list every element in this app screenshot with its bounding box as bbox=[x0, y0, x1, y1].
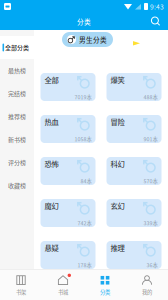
staticText: 全部分类 bbox=[5, 43, 29, 52]
button[interactable]: 推理 bbox=[106, 241, 161, 269]
staticText: 书城 bbox=[58, 288, 68, 296]
button[interactable]: 冒险 bbox=[106, 115, 161, 143]
button[interactable]: 恐怖 bbox=[40, 157, 95, 185]
staticText: 推理 bbox=[110, 242, 124, 253]
button[interactable]: 分类 bbox=[84, 269, 126, 300]
staticText: 488本 bbox=[143, 93, 157, 101]
staticText: 分类 bbox=[77, 17, 91, 26]
button[interactable]: 新书榜 bbox=[0, 128, 34, 151]
button[interactable]: 热血 bbox=[40, 115, 95, 143]
button[interactable]: 最热榜 bbox=[0, 59, 34, 82]
staticText: 1058本 bbox=[74, 135, 91, 143]
staticText: 魔幻 bbox=[44, 200, 58, 211]
staticText: 7019本 bbox=[74, 93, 91, 101]
staticText: 恐怖 bbox=[44, 158, 58, 169]
button[interactable]: 科幻 bbox=[106, 157, 161, 185]
button[interactable]: 推荐榜 bbox=[0, 105, 34, 128]
button[interactable]: 评分榜 bbox=[0, 151, 34, 174]
button[interactable]: 书架 bbox=[0, 269, 42, 300]
staticText: 84本 bbox=[80, 177, 91, 185]
button[interactable]: 魔幻 bbox=[40, 199, 95, 227]
button[interactable]: 男生分类 bbox=[62, 32, 113, 47]
button[interactable]: 悬疑 bbox=[40, 241, 95, 269]
staticText: 全部 bbox=[44, 74, 58, 85]
staticText: 我的 bbox=[142, 288, 152, 296]
staticText: 178本 bbox=[77, 261, 91, 269]
staticText: 最热榜 bbox=[8, 66, 26, 75]
staticText: 男生分类 bbox=[79, 35, 107, 44]
staticText: 收藏榜 bbox=[8, 181, 26, 190]
button[interactable]: 完结榜 bbox=[0, 82, 34, 105]
button[interactable]: 玄幻 bbox=[106, 199, 161, 227]
staticText: 玄幻 bbox=[110, 200, 124, 211]
staticText: 9:43 bbox=[150, 2, 164, 11]
staticText: 901本 bbox=[143, 135, 157, 143]
staticText: 完结榜 bbox=[8, 89, 26, 98]
staticText: 分类 bbox=[100, 288, 110, 296]
staticText: 339本 bbox=[143, 219, 157, 227]
button[interactable]: Search bbox=[144, 13, 166, 30]
staticText: 悬疑 bbox=[44, 242, 58, 253]
staticText: 书架 bbox=[16, 288, 26, 296]
staticText: 新书榜 bbox=[8, 135, 26, 144]
staticText: 科幻 bbox=[110, 158, 124, 169]
staticText: 冒险 bbox=[110, 116, 124, 127]
button[interactable]: 收藏榜 bbox=[0, 174, 34, 197]
staticText: 36本 bbox=[146, 261, 157, 269]
staticText: 570本 bbox=[143, 177, 157, 185]
button[interactable]: 书城 bbox=[42, 269, 84, 300]
staticText: 爆笑 bbox=[110, 74, 124, 85]
staticText: 推荐榜 bbox=[8, 112, 26, 121]
staticText: 热血 bbox=[44, 116, 58, 127]
button[interactable]: 爆笑 bbox=[106, 73, 161, 101]
button[interactable]: 全部 bbox=[40, 73, 95, 101]
button[interactable]: 全部分类 bbox=[0, 36, 34, 59]
staticText: 742本 bbox=[77, 219, 91, 227]
button[interactable]: 我的 bbox=[126, 269, 168, 300]
staticText: 评分榜 bbox=[8, 158, 26, 167]
